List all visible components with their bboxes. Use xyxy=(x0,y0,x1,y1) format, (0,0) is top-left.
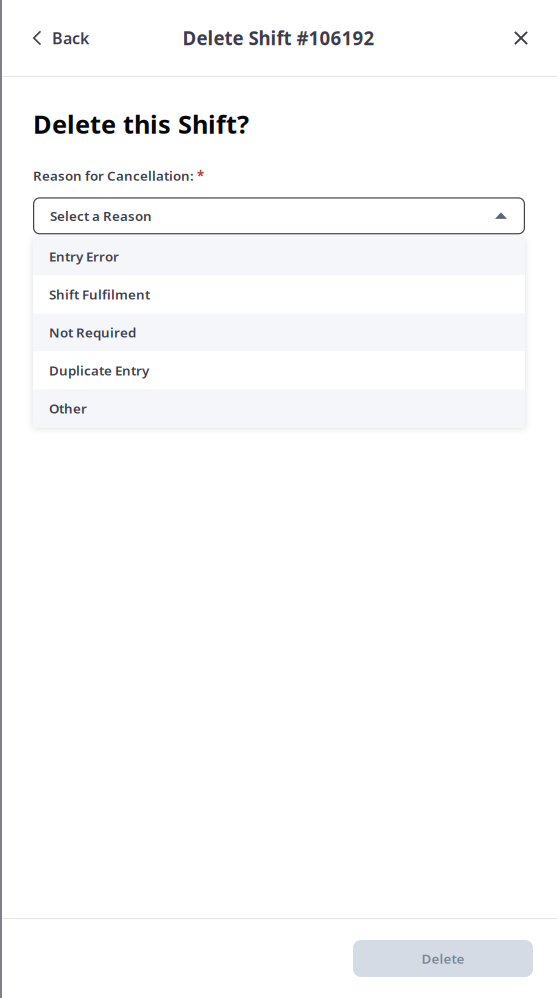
button[interactable]: Select a Reason xyxy=(33,197,525,234)
button[interactable]: Back xyxy=(0,0,107,76)
staticText: Duplicate Entry xyxy=(49,361,149,379)
staticText: Not Required xyxy=(49,323,136,341)
button[interactable]: Other xyxy=(33,389,525,427)
staticText: Select a Reason xyxy=(50,207,152,225)
staticText: * xyxy=(197,167,204,184)
button[interactable]: Not Required xyxy=(33,313,525,351)
staticText: Entry Error xyxy=(49,247,119,265)
button[interactable]: Close xyxy=(492,0,557,76)
staticText: Back xyxy=(52,27,89,49)
button[interactable]: Delete xyxy=(353,940,533,977)
staticText: Reason for Cancellation: xyxy=(33,167,194,184)
staticText: Other xyxy=(49,399,87,417)
button[interactable]: Duplicate Entry xyxy=(33,351,525,389)
button[interactable]: Shift Fulfilment xyxy=(33,275,525,313)
staticText: Delete xyxy=(421,950,464,967)
staticText: Delete this Shift? xyxy=(33,107,249,141)
staticText: Delete Shift #106192 xyxy=(182,26,374,50)
button[interactable]: Entry Error xyxy=(33,237,525,275)
staticText: Shift Fulfilment xyxy=(49,285,150,303)
